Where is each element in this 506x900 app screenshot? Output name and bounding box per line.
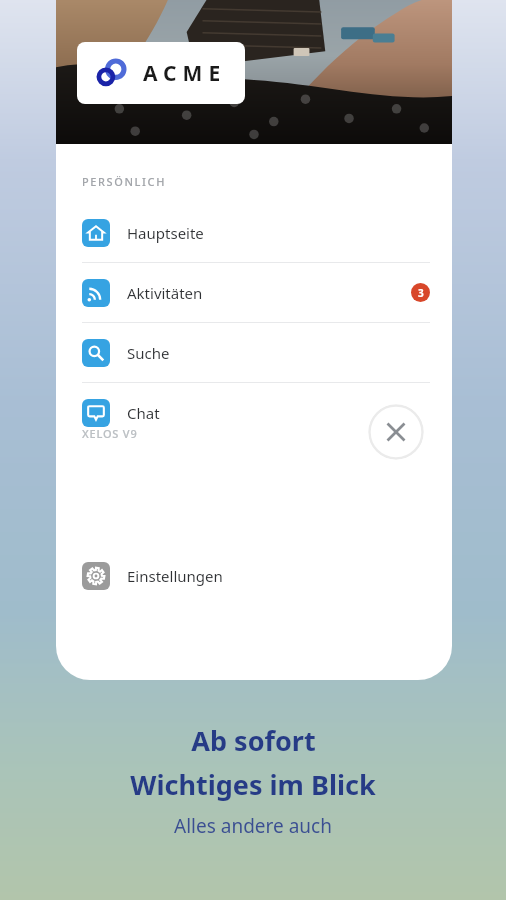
staticText: PERSÖNLICH	[82, 174, 166, 189]
button[interactable]: Suche	[56, 323, 452, 382]
staticText: ACME	[143, 59, 227, 88]
button[interactable]: Einstellungen	[56, 546, 452, 605]
staticText: Alles andere auch	[174, 813, 332, 839]
button[interactable]: Schließen	[368, 404, 424, 460]
staticText: Ab sofort	[191, 722, 316, 759]
staticText: Einstellungen	[127, 566, 223, 586]
staticText: XELOS V9	[82, 426, 138, 441]
staticText: Hauptseite	[127, 223, 204, 243]
button[interactable]: Chat	[56, 383, 452, 442]
button[interactable]: Hauptseite	[56, 203, 452, 262]
staticText: Wichtiges im Blick	[130, 766, 376, 803]
staticText: Chat	[127, 403, 160, 423]
staticText: Aktivitäten	[127, 283, 203, 303]
staticText: 3	[418, 286, 424, 300]
staticText: Suche	[127, 343, 170, 363]
button[interactable]: Aktivitäten	[56, 263, 452, 322]
